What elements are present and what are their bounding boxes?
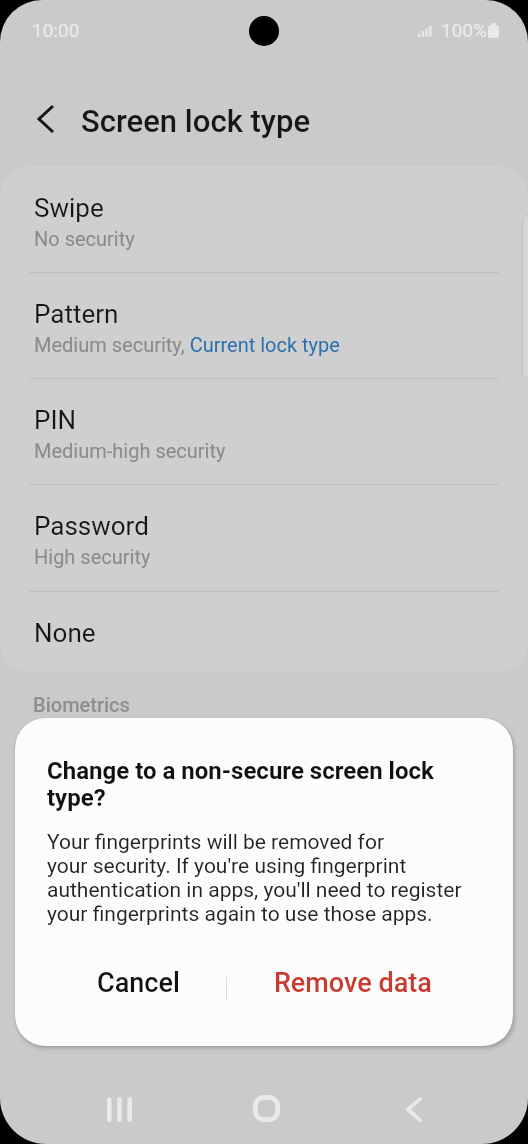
staticText: Screen lock type <box>81 103 311 139</box>
button[interactable]: Navigate up <box>21 94 70 143</box>
staticText: Remove data <box>274 967 432 999</box>
staticText: Medium security, Current lock type <box>34 333 340 356</box>
staticText: 10:00 <box>32 19 80 41</box>
staticText: Biometrics <box>33 693 130 716</box>
staticText: Change to a non-secure screen lock type? <box>47 757 447 812</box>
staticText: Medium-high security <box>34 439 226 462</box>
button[interactable]: Remove data <box>249 953 457 1033</box>
staticText: None <box>34 618 96 648</box>
button[interactable]: Password <box>0 485 528 592</box>
staticText: High security <box>34 545 151 568</box>
button[interactable]: None <box>0 592 528 672</box>
staticText: Cancel <box>97 967 180 999</box>
staticText: Password <box>34 511 149 541</box>
button[interactable]: Swipe <box>0 166 528 273</box>
button[interactable]: Pattern <box>0 273 528 379</box>
button[interactable]: Recent apps <box>82 1072 156 1144</box>
button[interactable]: PIN <box>0 379 528 485</box>
staticText: Swipe <box>34 193 104 223</box>
staticText: No security <box>34 227 135 250</box>
staticText: Your fingerprints will be removed for yo… <box>47 830 462 926</box>
button[interactable]: Back <box>377 1072 451 1144</box>
button[interactable]: Cancel <box>34 953 242 1033</box>
staticText: Pattern <box>34 299 119 329</box>
staticText: 100% <box>441 19 487 41</box>
button[interactable]: Home <box>229 1071 303 1144</box>
staticText: PIN <box>34 405 77 435</box>
